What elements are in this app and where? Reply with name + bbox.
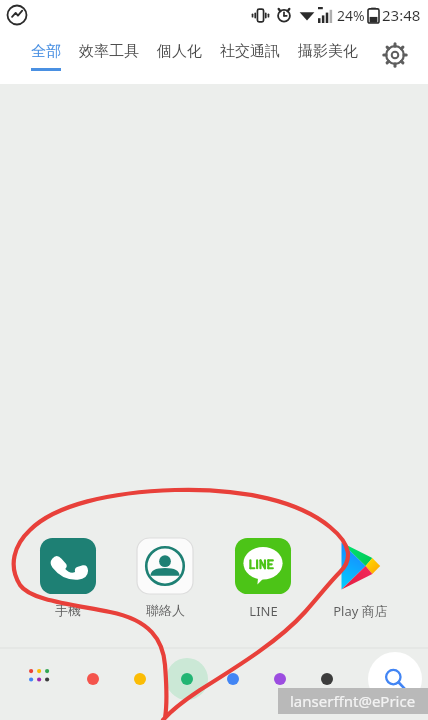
button[interactable]: Settings bbox=[380, 40, 410, 70]
staticText: 攝影美化 bbox=[298, 42, 358, 61]
button[interactable]: Play 商店 bbox=[321, 538, 399, 620]
staticText: lanserffnt@ePrice bbox=[290, 691, 416, 711]
staticText: 23:48 bbox=[382, 5, 421, 25]
staticText: 社交通訊 bbox=[220, 42, 280, 61]
button[interactable]: 個人化 bbox=[148, 30, 211, 68]
button[interactable]: 手機 bbox=[29, 538, 107, 618]
button[interactable]: 社交通訊 bbox=[211, 30, 289, 68]
button[interactable]: Search bbox=[368, 652, 422, 706]
button[interactable]: 聯絡人 bbox=[126, 538, 204, 618]
button[interactable]: LINE bbox=[224, 538, 302, 620]
button[interactable]: All apps bbox=[22, 662, 56, 696]
staticText: 24% bbox=[337, 6, 365, 25]
staticText: Play 商店 bbox=[333, 602, 388, 620]
staticText: 手機 bbox=[55, 602, 81, 618]
staticText: 聯絡人 bbox=[146, 602, 185, 618]
staticText: LINE bbox=[249, 602, 278, 620]
button[interactable]: 攝影美化 bbox=[289, 30, 367, 68]
button[interactable]: Page 0 bbox=[72, 658, 114, 700]
staticText: 全部 bbox=[31, 42, 61, 61]
button[interactable]: 效率工具 bbox=[70, 30, 148, 68]
button[interactable]: Page 2 bbox=[166, 658, 208, 700]
button[interactable]: Page 3 bbox=[212, 658, 254, 700]
button[interactable]: Page 5 bbox=[306, 658, 348, 700]
button[interactable]: Page 1 bbox=[119, 658, 161, 700]
button[interactable]: 全部 bbox=[22, 30, 70, 71]
staticText: 效率工具 bbox=[79, 42, 139, 61]
staticText: 個人化 bbox=[157, 42, 202, 61]
button[interactable]: Page 4 bbox=[259, 658, 301, 700]
